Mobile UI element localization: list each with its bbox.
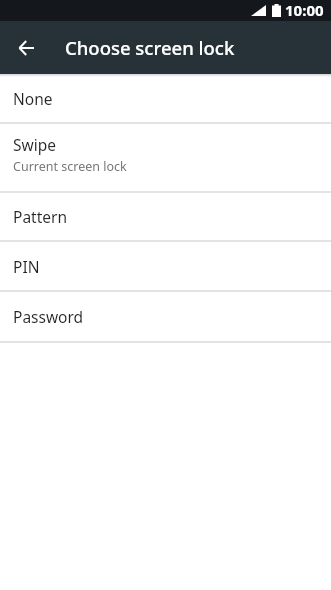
button[interactable]: Pattern bbox=[0, 193, 331, 240]
staticText: Pattern bbox=[13, 206, 67, 227]
button[interactable]: None bbox=[0, 74, 331, 122]
staticText: Choose screen lock bbox=[65, 35, 235, 60]
staticText: None bbox=[13, 88, 53, 109]
staticText: 10:00 bbox=[285, 0, 324, 20]
button[interactable]: Password bbox=[0, 292, 331, 341]
staticText: Current screen lock bbox=[13, 158, 127, 175]
staticText: PIN bbox=[13, 256, 40, 277]
staticText: Swipe bbox=[13, 134, 56, 155]
button[interactable]: PIN bbox=[0, 242, 331, 290]
staticText: Password bbox=[13, 306, 84, 327]
button[interactable]: Swipe bbox=[0, 124, 331, 191]
button[interactable] bbox=[10, 32, 42, 64]
